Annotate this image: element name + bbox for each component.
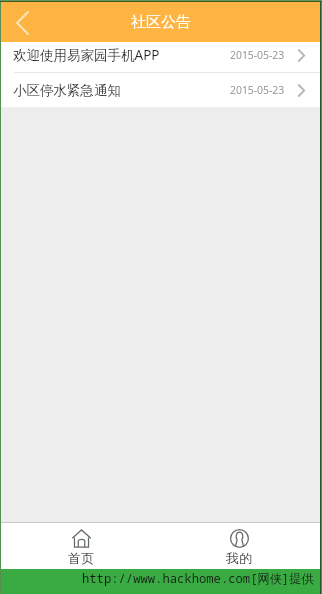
staticText: 社区公告 xyxy=(131,13,191,32)
staticText: 我的 xyxy=(226,550,253,567)
button[interactable]: 首页 xyxy=(1,523,160,569)
button[interactable]: 小区停水紧急通知 xyxy=(1,73,320,107)
button[interactable]: Back xyxy=(1,2,45,42)
staticText: 欢迎使用易家园手机APP xyxy=(13,46,160,64)
staticText: 2015-05-23 xyxy=(230,83,285,97)
button[interactable]: 欢迎使用易家园手机APP xyxy=(1,42,320,72)
staticText: 小区停水紧急通知 xyxy=(13,82,121,99)
staticText: 2015-05-23 xyxy=(230,48,285,62)
button[interactable]: 我的 xyxy=(160,523,320,569)
staticText: 首页 xyxy=(68,550,95,567)
staticText: http://www.hackhome.com[网侠]提供 xyxy=(82,570,314,587)
